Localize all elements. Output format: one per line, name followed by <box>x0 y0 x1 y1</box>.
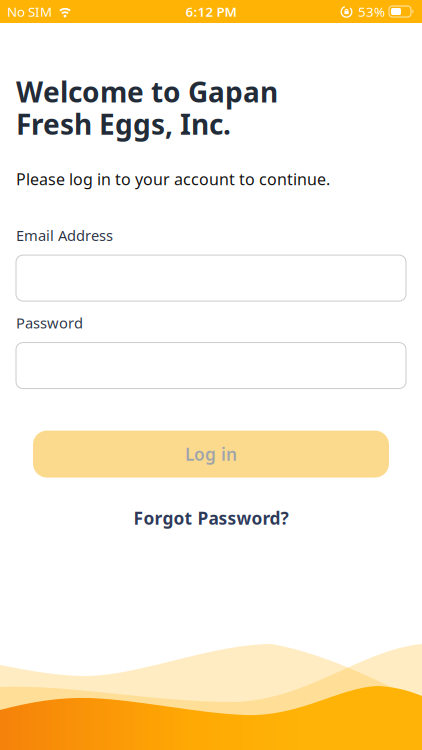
button[interactable]: Forgot Password? <box>133 507 288 530</box>
staticText: 6:12 PM <box>185 3 236 20</box>
staticText: Welcome to Gapan Fresh Eggs, Inc. <box>16 73 278 142</box>
staticText: Email Address <box>16 226 113 245</box>
staticText: Please log in to your account to continu… <box>16 168 330 190</box>
staticText: Forgot Password? <box>133 507 288 530</box>
button[interactable] <box>16 255 406 301</box>
staticText: 53% <box>358 3 385 20</box>
staticText: No SIM <box>7 3 52 20</box>
button[interactable] <box>16 343 406 389</box>
staticText: Log in <box>185 443 237 466</box>
staticText: Password <box>16 313 83 333</box>
button[interactable]: Log in <box>33 431 389 478</box>
